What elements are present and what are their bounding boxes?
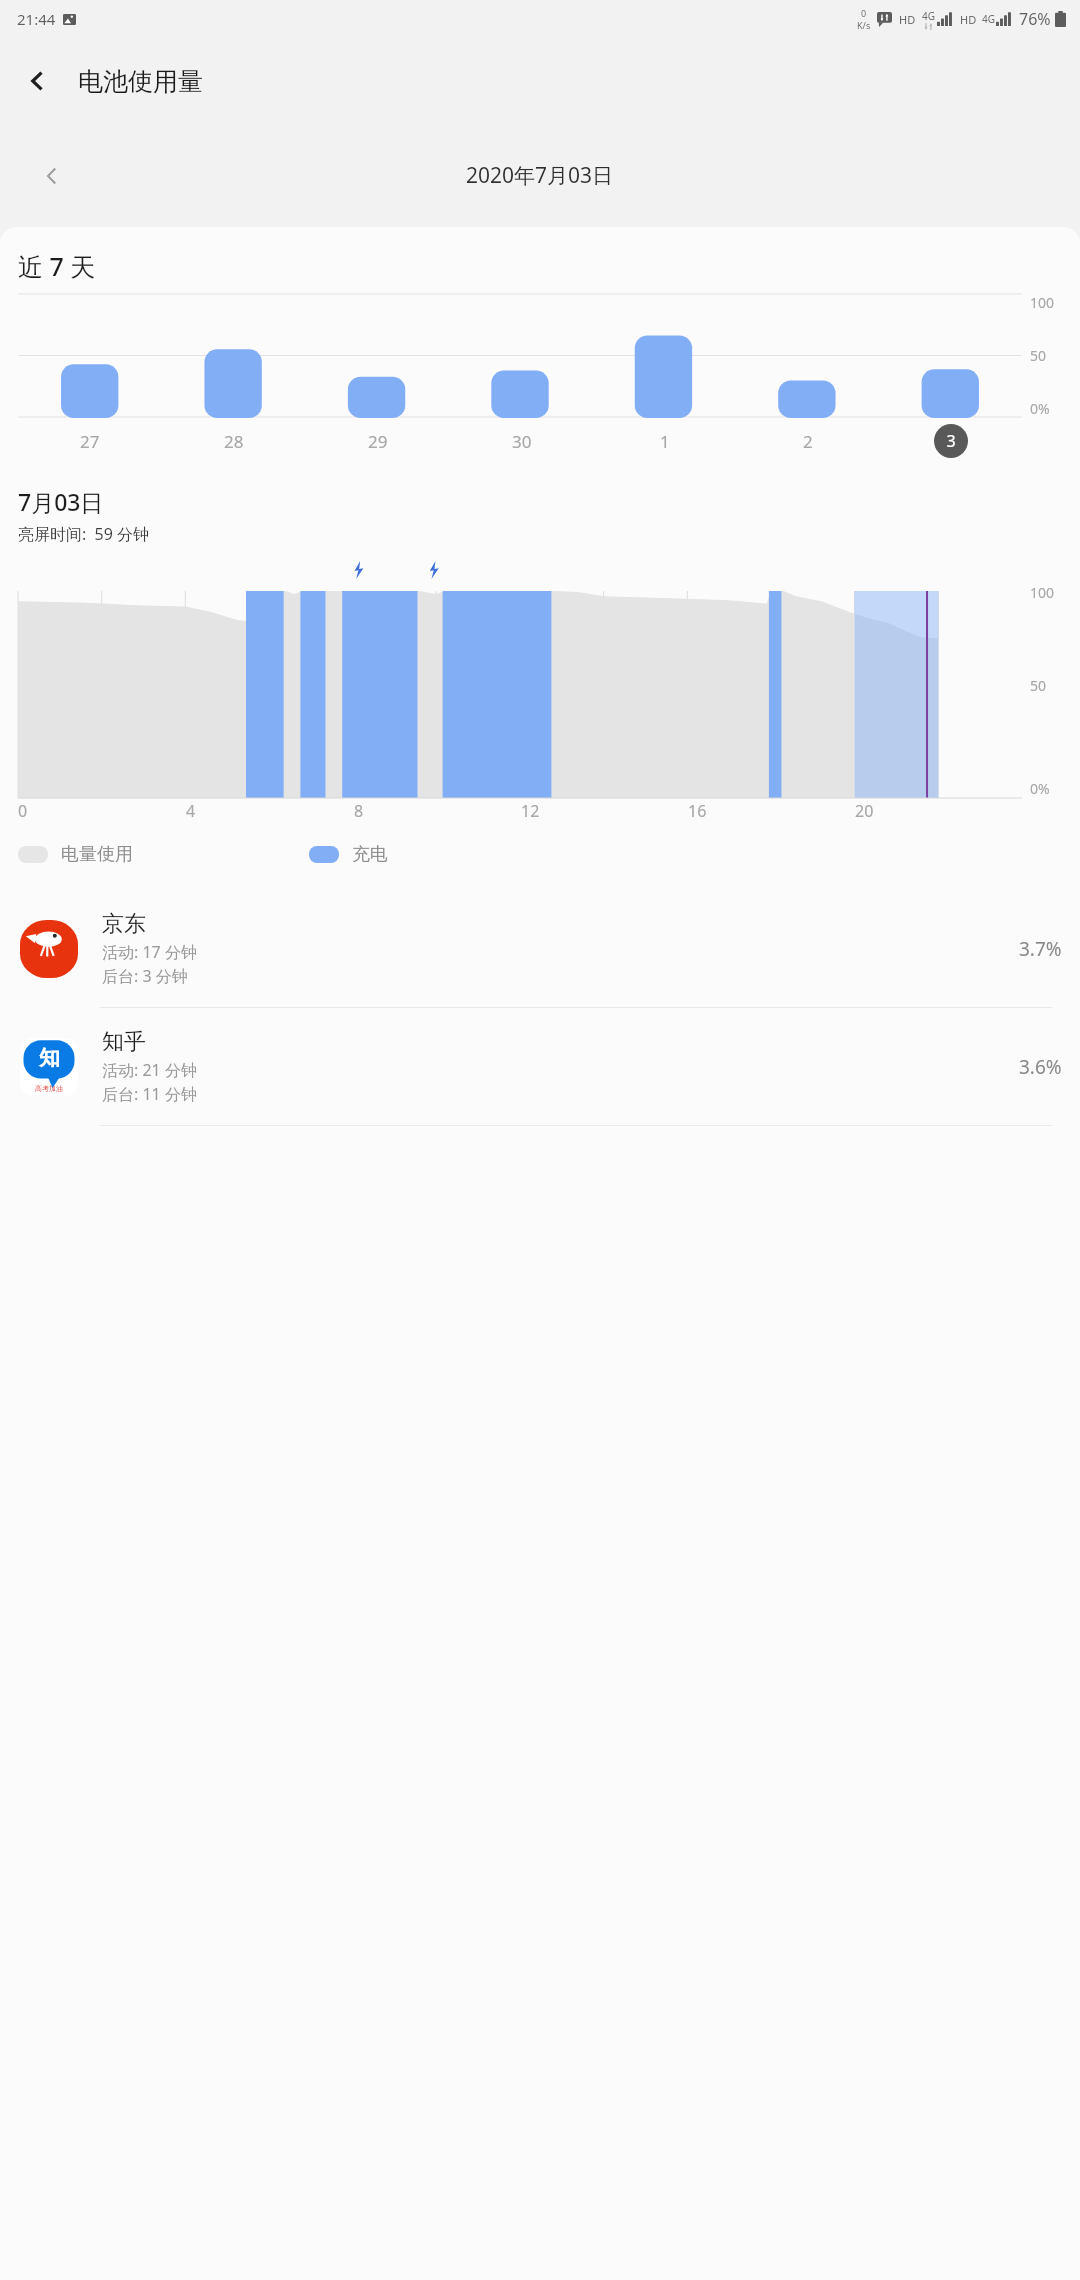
button[interactable]: 30	[512, 430, 532, 453]
staticText: 0%	[1030, 399, 1050, 418]
staticText: 100	[1030, 293, 1055, 312]
button[interactable]: Back	[10, 53, 66, 109]
staticText: 京东	[102, 910, 146, 938]
button[interactable]: 29	[368, 430, 388, 453]
staticText: 16	[688, 800, 707, 822]
staticText: 高考加油	[35, 1084, 63, 1093]
staticText: 4G	[922, 9, 935, 23]
staticText: 活动: 17 分钟	[102, 941, 197, 963]
staticText: 7月03日	[18, 486, 104, 517]
button[interactable]: 3	[934, 424, 968, 458]
staticText: 76%	[1019, 8, 1051, 30]
staticText: 3.7%	[1019, 936, 1062, 962]
button[interactable]: 2	[803, 430, 813, 453]
staticText: 电量使用	[61, 843, 133, 866]
staticText: 12	[521, 800, 540, 822]
staticText: 后台: 3 分钟	[102, 965, 188, 987]
staticText: 0	[18, 800, 28, 822]
button[interactable]: 27	[80, 430, 100, 453]
button[interactable]: 京东	[0, 890, 1080, 1008]
staticText: 50	[1030, 346, 1047, 365]
staticText: 亮屏时间: 59 分钟	[18, 523, 150, 545]
staticText: 100	[1030, 583, 1055, 602]
staticText: 3	[946, 430, 956, 452]
staticText: 0	[861, 7, 867, 19]
staticText: 3.6%	[1019, 1054, 1062, 1080]
staticText: 活动: 21 分钟	[102, 1059, 197, 1081]
staticText: HD	[899, 12, 916, 27]
button[interactable]: 28	[224, 430, 244, 453]
staticText: 0%	[1030, 779, 1050, 798]
staticText: 知	[39, 1045, 60, 1071]
staticText: 知乎	[102, 1028, 146, 1056]
staticText: 50	[1030, 676, 1047, 695]
staticText: 电池使用量	[78, 66, 203, 97]
button[interactable]: 知	[0, 1008, 1080, 1126]
staticText: 充电	[352, 843, 388, 866]
staticText: 4G	[982, 12, 995, 26]
staticText: 2020年7月03日	[466, 161, 614, 190]
staticText: HD	[960, 12, 977, 27]
staticText: 20	[855, 800, 874, 822]
button[interactable]: 1	[660, 430, 670, 453]
staticText: 4	[186, 800, 196, 822]
staticText: 8	[354, 800, 364, 822]
staticText: 后台: 11 分钟	[102, 1083, 197, 1105]
staticText: 21:44	[17, 9, 56, 29]
staticText: K/s	[857, 19, 871, 31]
staticText: 近 7 天	[18, 249, 96, 283]
button[interactable]: Previous day	[26, 150, 78, 202]
